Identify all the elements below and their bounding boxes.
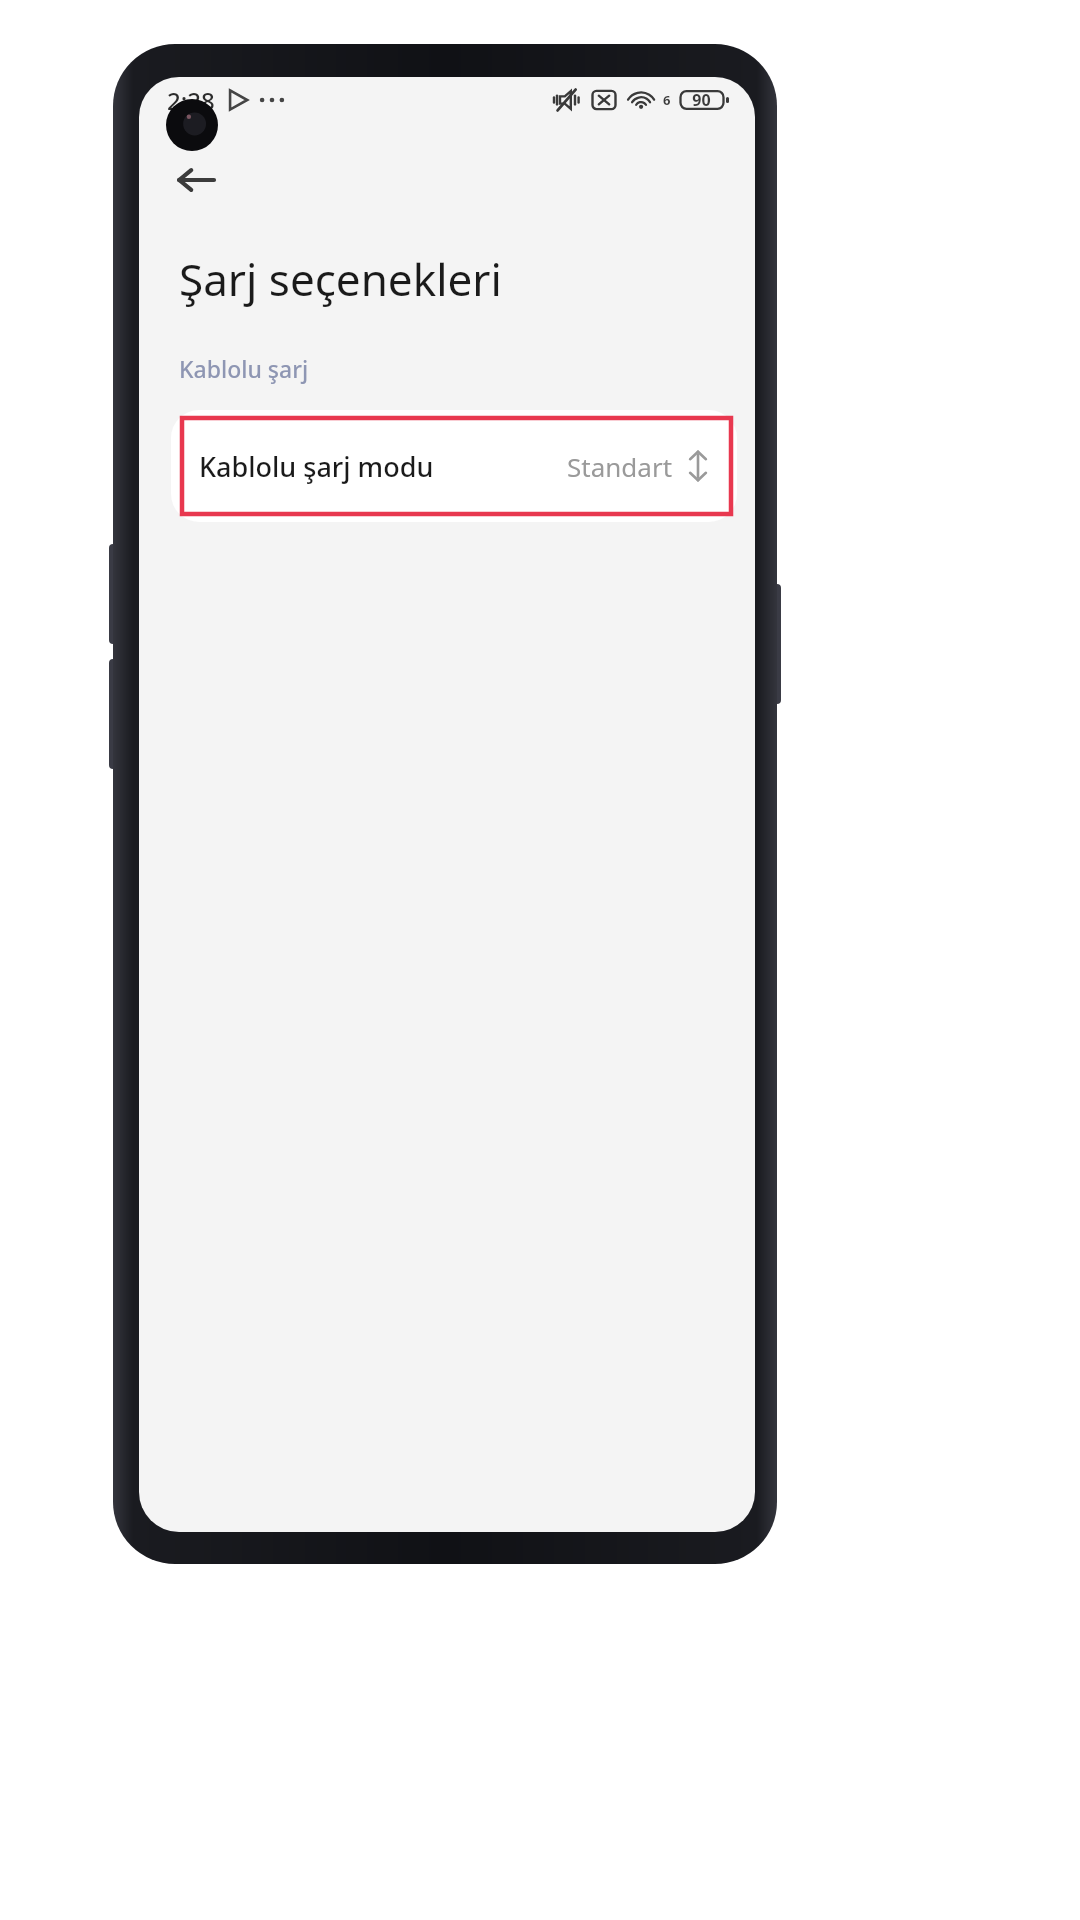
button[interactable]: Kablolu şarj modu	[171, 410, 737, 522]
staticText: Kablolu şarj	[179, 353, 309, 384]
staticText: Standart	[567, 449, 673, 484]
staticText: 90	[692, 89, 711, 111]
staticText: Şarj seçenekleri	[179, 249, 502, 309]
staticText: 6	[663, 91, 671, 109]
staticText: 2:28	[167, 84, 215, 117]
button[interactable]: Back	[165, 149, 227, 211]
staticText: Kablolu şarj modu	[199, 448, 434, 485]
